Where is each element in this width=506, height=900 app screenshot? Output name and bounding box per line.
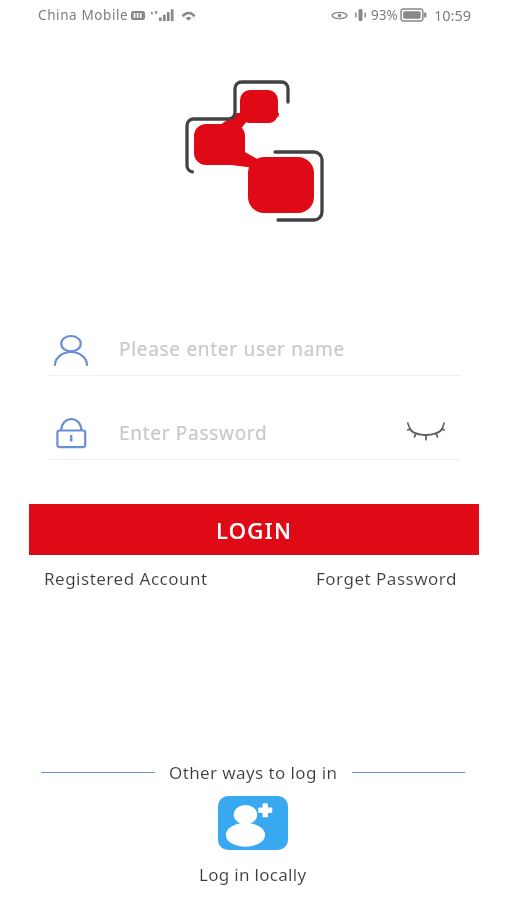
button[interactable]: Show password — [404, 411, 448, 455]
staticText: Please enter user name — [119, 336, 345, 362]
staticText: China Mobile — [38, 6, 129, 24]
button[interactable]: Log in locally — [199, 796, 307, 886]
button[interactable]: LOGIN — [29, 504, 479, 555]
staticText: Other ways to log in — [169, 761, 338, 784]
button[interactable]: Registered Account — [44, 567, 208, 590]
button[interactable]: Enter Password — [47, 406, 460, 459]
staticText: Forget Password — [316, 567, 457, 590]
staticText: 93% — [371, 6, 398, 24]
staticText: Registered Account — [44, 567, 208, 590]
button[interactable]: Please enter user name — [47, 322, 460, 375]
staticText: Enter Password — [119, 420, 268, 446]
staticText: Log in locally — [199, 863, 307, 886]
staticText: 10:59 — [434, 5, 472, 25]
staticText: LOGIN — [216, 515, 293, 545]
button[interactable]: Forget Password — [316, 567, 457, 590]
